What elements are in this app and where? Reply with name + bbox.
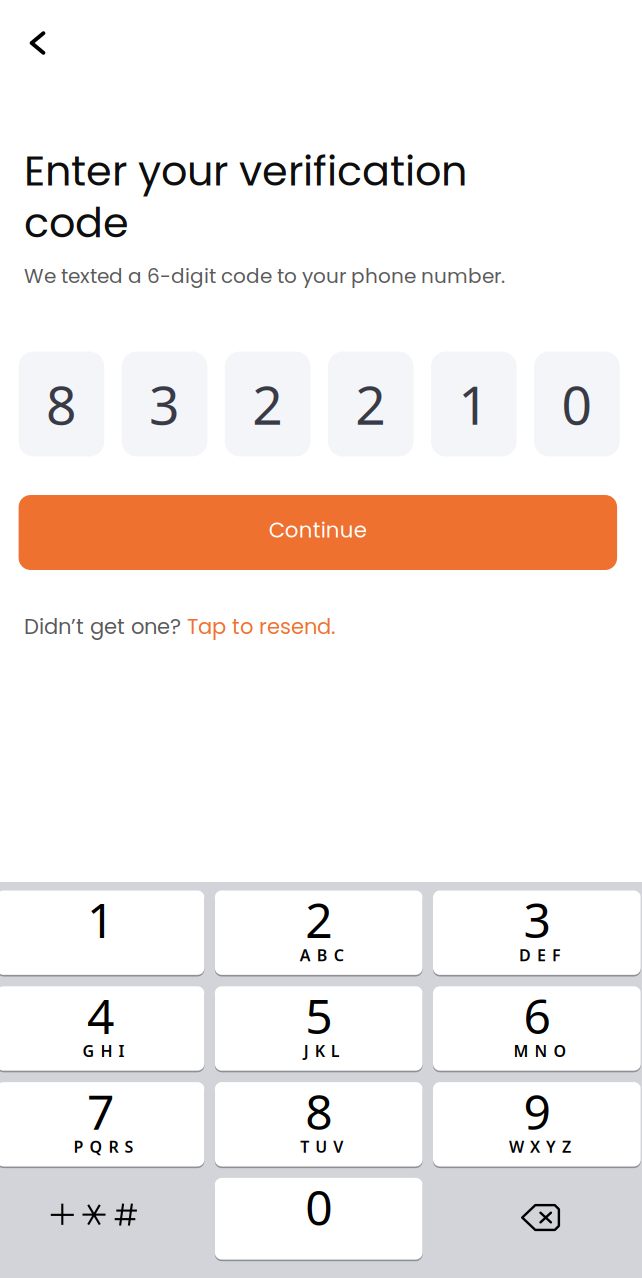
staticText: 7: [87, 1079, 114, 1143]
button[interactable]: 8: [215, 1082, 423, 1168]
staticText: 8: [46, 369, 77, 439]
button[interactable]: Continue: [19, 495, 617, 570]
button[interactable]: 1: [0, 890, 204, 976]
button[interactable]: 0: [215, 1178, 423, 1261]
button[interactable]: 4: [0, 986, 204, 1072]
staticText: Continue: [269, 515, 367, 545]
button[interactable]: 7: [0, 1082, 204, 1168]
staticText: 0: [561, 369, 592, 439]
button[interactable]: Delete: [433, 1179, 641, 1261]
staticText: TUV: [300, 1136, 343, 1157]
button[interactable]: 3: [433, 890, 641, 976]
button[interactable]: 2: [215, 890, 423, 976]
staticText: Tap to resend.: [187, 612, 335, 641]
staticText: MNO: [513, 1040, 566, 1061]
staticText: PQRS: [73, 1136, 133, 1157]
button[interactable]: Back: [0, 0, 68, 77]
staticText: 2: [355, 369, 386, 439]
button[interactable]: Symbols: [0, 1179, 204, 1261]
staticText: WXYZ: [509, 1136, 571, 1157]
button[interactable]: Tap to resend.: [187, 612, 335, 641]
staticText: 3: [523, 888, 550, 951]
staticText: Didn’t get one?: [24, 612, 187, 641]
staticText: Enter your verification code: [24, 142, 467, 252]
staticText: We texted a 6-digit code to your phone n…: [24, 262, 505, 290]
staticText: 1: [87, 888, 114, 951]
button[interactable]: 6: [433, 986, 641, 1072]
staticText: 2: [305, 888, 332, 951]
staticText: GHI: [82, 1040, 124, 1061]
staticText: DEF: [519, 944, 561, 966]
button[interactable]: 9: [433, 1082, 641, 1168]
staticText: ABC: [300, 944, 344, 966]
button[interactable]: 5: [215, 986, 423, 1072]
staticText: 6: [523, 983, 550, 1047]
staticText: 3: [149, 369, 180, 439]
staticText: 4: [87, 983, 114, 1047]
staticText: 0: [305, 1175, 332, 1239]
staticText: 5: [305, 983, 332, 1047]
staticText: 9: [523, 1079, 550, 1143]
staticText: 1: [458, 369, 489, 439]
staticText: 8: [305, 1079, 332, 1143]
staticText: JKL: [304, 1040, 340, 1061]
staticText: 2: [252, 369, 283, 439]
